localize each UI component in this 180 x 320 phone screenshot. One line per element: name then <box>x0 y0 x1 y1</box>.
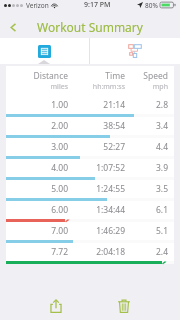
staticText: 6.1 <box>125 204 168 216</box>
staticText: 2:04:18 <box>68 246 125 258</box>
button[interactable]: List view <box>0 38 89 64</box>
staticText: 1:46:29 <box>68 225 125 237</box>
button[interactable]: 7.72 <box>6 243 174 264</box>
staticText: 3.4 <box>125 120 168 132</box>
staticText: 3.5 <box>125 183 168 195</box>
staticText: 5.00 <box>12 183 68 195</box>
button[interactable]: 6.00 <box>6 201 174 222</box>
button[interactable]: 4.00 <box>6 159 174 180</box>
staticText: 2.4 <box>125 246 168 258</box>
staticText: 4.00 <box>12 162 68 174</box>
staticText: miles <box>50 82 68 92</box>
staticText: 1:34:44 <box>68 204 125 216</box>
staticText: 6.00 <box>12 204 68 216</box>
staticText: 7.72 <box>12 246 68 258</box>
staticText: Distance <box>33 70 68 82</box>
staticText: 3.9 <box>125 162 168 174</box>
staticText: 1.00 <box>12 99 68 111</box>
button[interactable]: 7.00 <box>6 222 174 243</box>
button[interactable]: 3.00 <box>6 138 174 159</box>
button[interactable]: Share <box>44 294 68 318</box>
staticText: 9:17 PM <box>84 0 111 10</box>
staticText: 52:27 <box>68 141 125 153</box>
staticText: 21:14 <box>68 99 125 111</box>
button[interactable]: Chart view <box>90 38 180 64</box>
staticText: 5.1 <box>125 225 168 237</box>
staticText: 4.4 <box>125 141 168 153</box>
button[interactable]: 2.00 <box>6 117 174 138</box>
button[interactable]: 5.00 <box>6 180 174 201</box>
staticText: 2.00 <box>12 120 68 132</box>
staticText: 7.00 <box>12 225 68 237</box>
staticText: 1:24:55 <box>68 183 125 195</box>
staticText: 1:07:52 <box>68 162 125 174</box>
button[interactable]: Delete <box>112 294 136 318</box>
staticText: 38:54 <box>68 120 125 132</box>
staticText: Speed <box>143 70 168 82</box>
button[interactable]: Back <box>4 18 22 36</box>
staticText: Verizon <box>26 1 49 10</box>
staticText: mph <box>152 82 168 92</box>
button[interactable]: 1.00 <box>6 96 174 117</box>
staticText: hh:mm:ss <box>92 82 125 92</box>
staticText: 3.00 <box>12 141 68 153</box>
staticText: Workout Summary <box>37 19 143 35</box>
staticText: 2.8 <box>125 99 168 111</box>
staticText: Time <box>105 70 125 82</box>
staticText: 80% <box>145 1 158 10</box>
